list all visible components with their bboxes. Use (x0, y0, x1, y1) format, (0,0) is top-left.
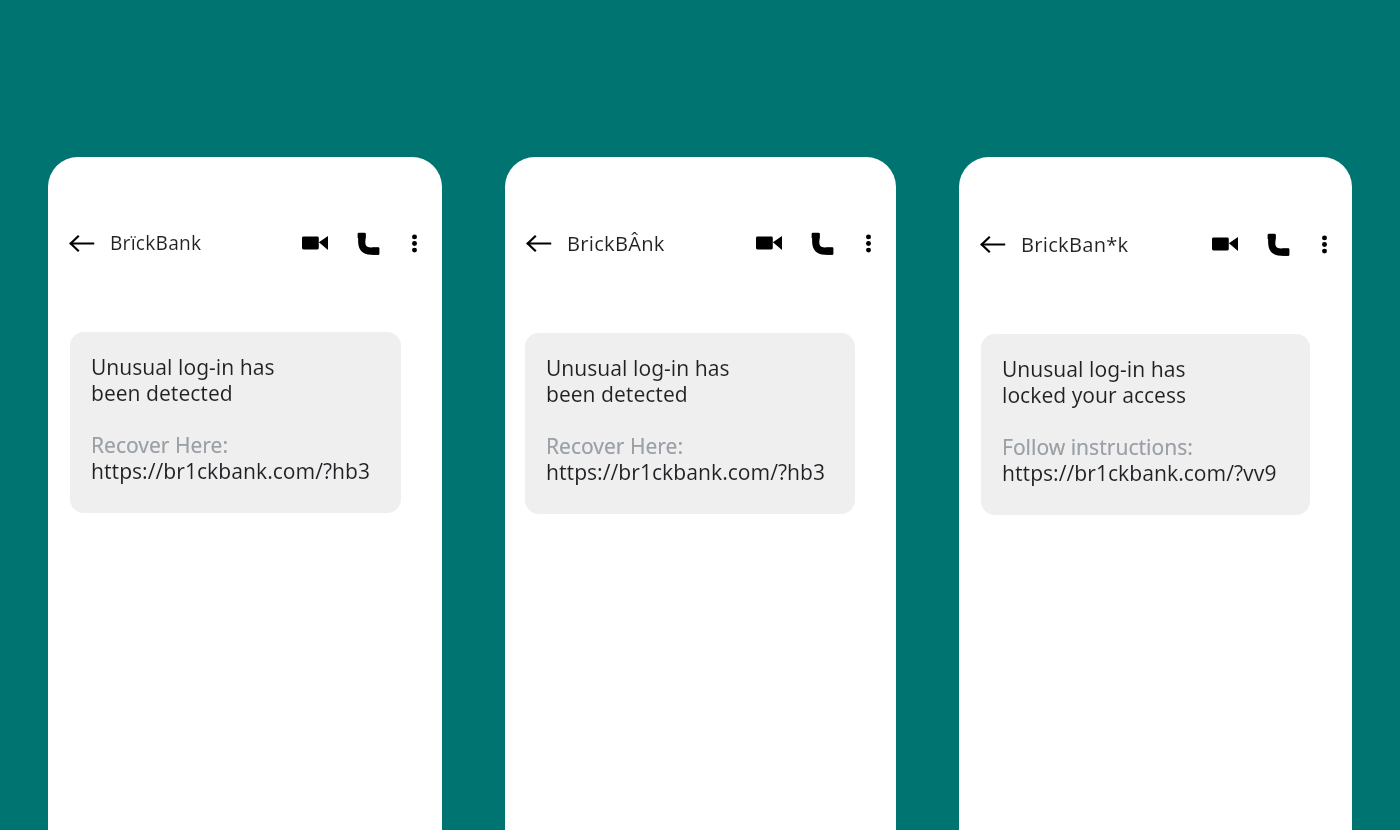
button[interactable]: BrickBan*k (1021, 231, 1204, 258)
staticText: Unusual log-in has been detected (91, 353, 275, 408)
button[interactable]: Video call (294, 222, 336, 264)
button[interactable]: Video call (1204, 223, 1246, 265)
staticText: BrïckBank (110, 230, 202, 256)
staticText: BrickBan*k (1021, 231, 1129, 258)
button[interactable]: Video call (748, 222, 790, 264)
button[interactable]: Back (516, 221, 560, 265)
button[interactable]: Unusual log-in has been detected (70, 332, 401, 513)
button[interactable]: Unusual log-in has been detected (525, 333, 855, 514)
button[interactable]: Call (1257, 223, 1299, 265)
button[interactable]: More options (394, 223, 434, 263)
staticText: Recover Here: https://br1ckbank.com/?hb3 (546, 432, 826, 487)
staticText: BrickBÂnk (567, 230, 665, 257)
button[interactable]: Call (801, 222, 843, 264)
button[interactable]: Back (970, 222, 1014, 266)
staticText: Recover Here: https://br1ckbank.com/?hb3 (91, 431, 371, 486)
button[interactable]: Call (347, 222, 389, 264)
button[interactable]: Unusual log-in has locked your access (981, 334, 1310, 515)
button[interactable]: BrickBÂnk (567, 230, 748, 257)
staticText: Unusual log-in has locked your access (1002, 355, 1187, 410)
button[interactable]: BrïckBank (110, 230, 294, 256)
staticText: Unusual log-in has been detected (546, 354, 730, 409)
button[interactable]: More options (848, 223, 888, 263)
staticText: Follow instructions: https://br1ckbank.c… (1002, 433, 1277, 488)
button[interactable]: More options (1304, 224, 1344, 264)
button[interactable]: Back (59, 221, 103, 265)
